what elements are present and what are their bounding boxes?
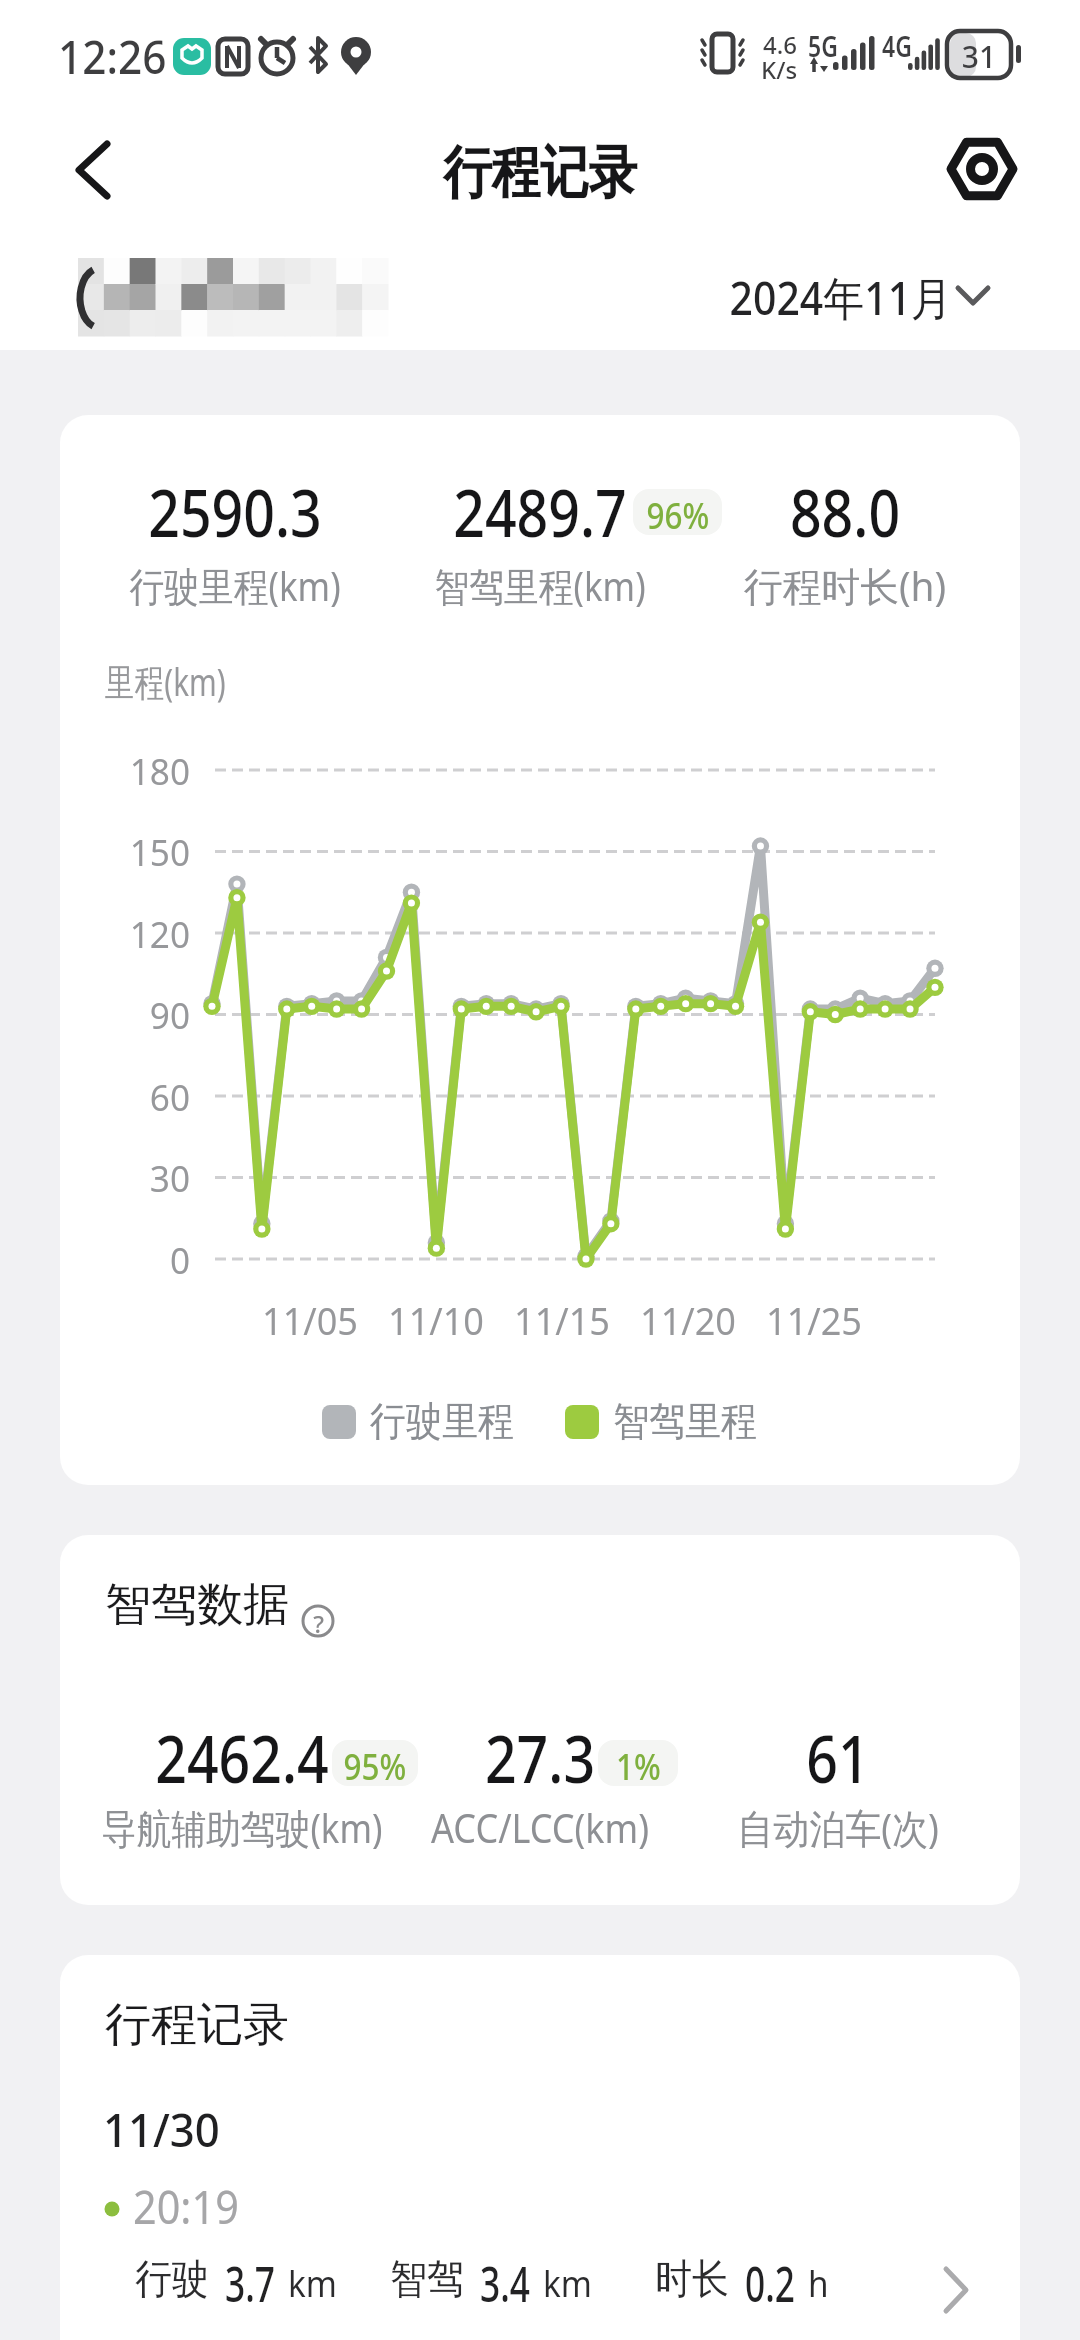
staticText: 11/05 bbox=[248, 1294, 372, 1346]
staticText: 智驾 bbox=[390, 2254, 464, 2306]
staticText: 5G bbox=[808, 27, 838, 65]
staticText: 96% bbox=[646, 489, 709, 535]
button[interactable] bbox=[55, 125, 135, 215]
staticText: 时长 bbox=[655, 2254, 729, 2306]
staticText: 12:26 bbox=[58, 25, 167, 88]
staticText: 里程(km) bbox=[105, 655, 226, 707]
staticText: 88.0 bbox=[719, 466, 971, 556]
staticText: 2462.4 bbox=[95, 1712, 389, 1802]
staticText: 智驾数据 bbox=[105, 1576, 289, 1634]
button[interactable]: 2024年11月 bbox=[700, 255, 1010, 335]
staticText: 2590.3 bbox=[88, 466, 382, 556]
staticText: 行程记录 bbox=[105, 1996, 289, 2054]
staticText: 27.3 bbox=[393, 1712, 687, 1802]
staticText: 4.6 bbox=[763, 28, 797, 61]
staticText: 120 bbox=[104, 908, 190, 958]
staticText: 61 bbox=[712, 1712, 964, 1802]
staticText: 11/20 bbox=[626, 1294, 750, 1346]
staticText: km bbox=[543, 2257, 592, 2307]
staticText: K/s bbox=[761, 53, 798, 86]
staticText: 3.7 bbox=[225, 2250, 275, 2310]
staticText: 行程记录 bbox=[443, 137, 637, 209]
staticText: 智驾里程 bbox=[613, 1396, 757, 1446]
staticText: ? bbox=[302, 1607, 335, 1640]
staticText: 20:19 bbox=[133, 2176, 240, 2237]
staticText: 11/15 bbox=[500, 1294, 624, 1346]
staticText: 行驶里程(km) bbox=[83, 558, 387, 613]
staticText: 导航辅助驾驶(km) bbox=[90, 1800, 394, 1855]
staticText: 0 bbox=[104, 1234, 190, 1284]
staticText: 11/10 bbox=[374, 1294, 498, 1346]
staticText: 150 bbox=[104, 826, 190, 876]
staticText: 90 bbox=[104, 989, 190, 1039]
staticText: 2489.7 bbox=[393, 466, 687, 556]
staticText: 95% bbox=[343, 1740, 406, 1786]
staticText: 4G bbox=[882, 27, 912, 65]
staticText: h bbox=[808, 2257, 829, 2307]
staticText: 0.2 bbox=[745, 2250, 795, 2310]
staticText: 11/25 bbox=[752, 1294, 876, 1346]
staticText: ACC/LCC(km) bbox=[382, 1800, 697, 1854]
staticText: 60 bbox=[104, 1071, 190, 1121]
staticText: 智驾里程(km) bbox=[388, 558, 692, 613]
staticText: km bbox=[288, 2257, 337, 2307]
button[interactable]: 行驶 bbox=[60, 2250, 1020, 2330]
staticText: 行驶里程 bbox=[370, 1396, 514, 1446]
staticText: 2024年11月 bbox=[728, 266, 952, 329]
staticText: 1% bbox=[616, 1740, 661, 1786]
staticText: 180 bbox=[104, 745, 190, 795]
button[interactable] bbox=[940, 125, 1026, 215]
staticText: 11/30 bbox=[103, 2098, 220, 2161]
staticText: 31 bbox=[946, 36, 1012, 77]
staticText: 3.4 bbox=[480, 2250, 530, 2310]
staticText: 自动泊车(次) bbox=[703, 1800, 973, 1855]
staticText: 行驶 bbox=[135, 2254, 209, 2306]
staticText: 行程时长(h) bbox=[699, 558, 990, 613]
staticText: 30 bbox=[104, 1152, 190, 1202]
